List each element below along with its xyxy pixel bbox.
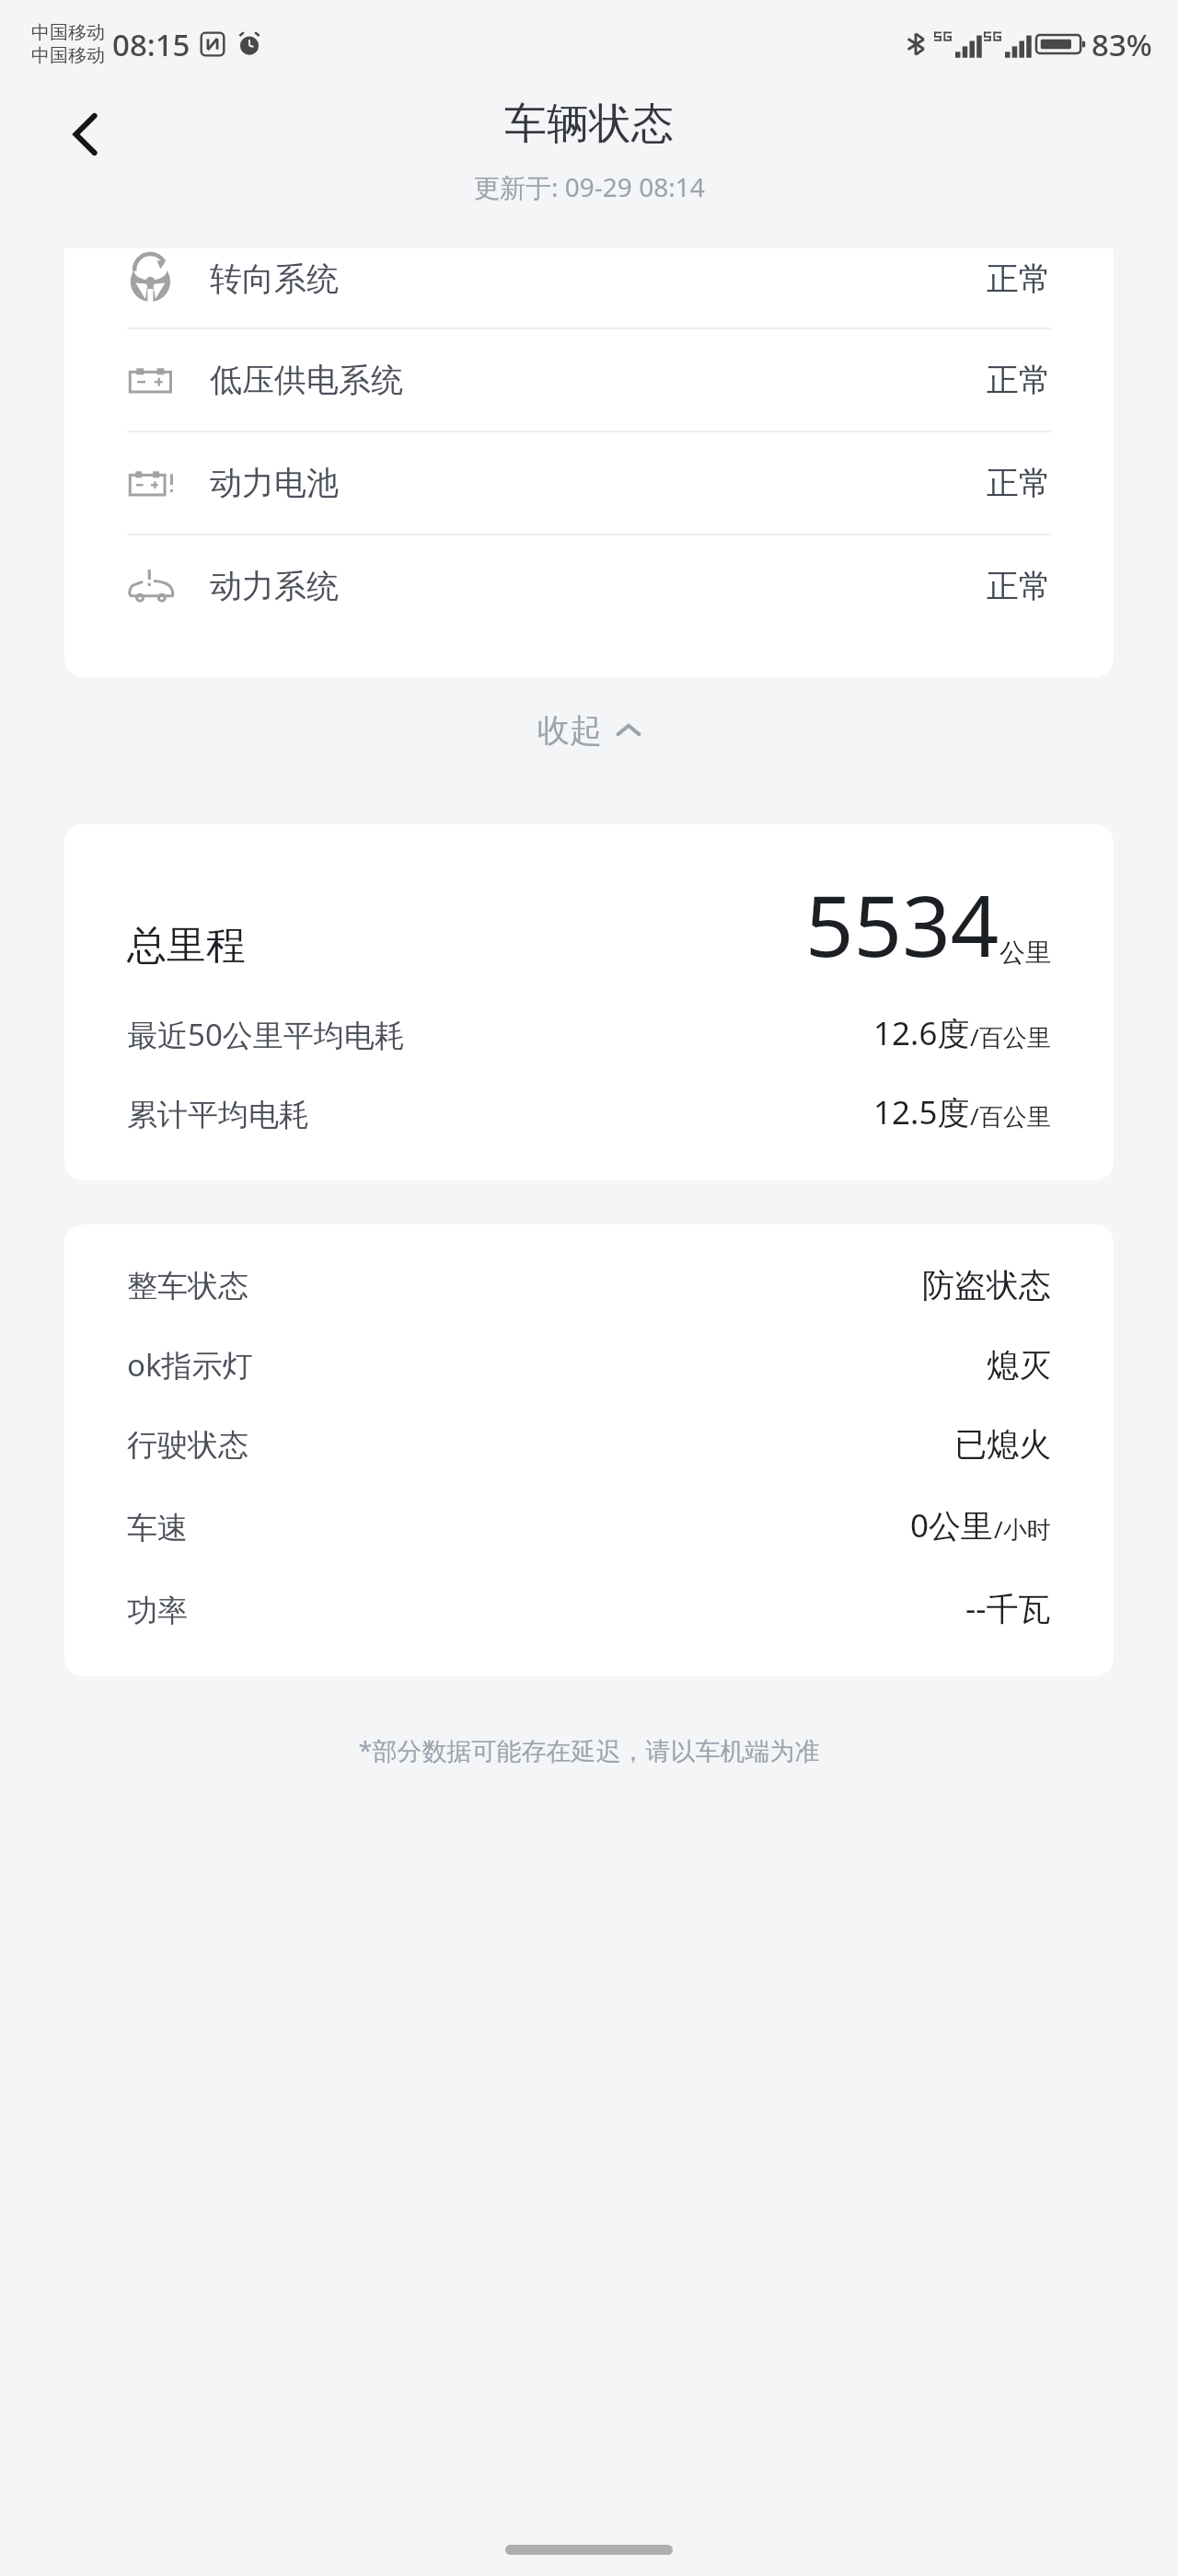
staticText: 熄灭 [987, 1345, 1051, 1386]
staticText: 累计平均电耗 [127, 1096, 309, 1134]
staticText: /百公里 [970, 1099, 1051, 1133]
button[interactable]: ok指示灯 [127, 1344, 1051, 1386]
staticText: 功率 [127, 1592, 188, 1630]
button[interactable]: 动力系统 [64, 535, 1114, 677]
staticText: 正常 [987, 566, 1051, 606]
staticText: 12.6度 [873, 1011, 970, 1055]
button[interactable]: 整车状态 [127, 1265, 1051, 1305]
staticText: 车辆状态 [504, 98, 674, 151]
staticText: 总里程 [127, 921, 246, 971]
button[interactable]: 低压供电系统 [64, 329, 1114, 431]
staticText: 已熄火 [954, 1424, 1051, 1465]
staticText: /百公里 [970, 1020, 1051, 1053]
staticText: 最近50公里平均电耗 [127, 1014, 405, 1055]
staticText: 中国移动 [31, 44, 105, 67]
staticText: 转向系统 [210, 259, 987, 299]
staticText: 0公里 [910, 1503, 994, 1547]
staticText: 车速 [127, 1509, 188, 1547]
button[interactable]: 总里程 [127, 867, 1051, 982]
staticText: 行驶状态 [127, 1426, 248, 1465]
staticText: 动力系统 [210, 566, 987, 606]
staticText: 整车状态 [127, 1267, 248, 1305]
staticText: 更新于: 09-29 08:14 [474, 169, 705, 204]
staticText: 08:15 [112, 24, 191, 65]
staticText: 5534 [805, 867, 999, 982]
button[interactable]: 功率 [127, 1586, 1051, 1630]
staticText: 公里 [999, 937, 1051, 969]
staticText: 中国移动 [31, 21, 105, 44]
button[interactable]: 收起 [497, 692, 681, 769]
staticText: *部分数据可能存在延迟，请以车机端为准 [0, 1733, 1178, 1767]
button[interactable]: 动力电池 [64, 432, 1114, 534]
button[interactable]: 转向系统 [64, 248, 1114, 328]
button[interactable]: Back [50, 98, 123, 171]
button[interactable]: 行驶状态 [127, 1424, 1051, 1465]
staticText: 83% [1091, 24, 1152, 65]
staticText: 低压供电系统 [210, 360, 987, 400]
button[interactable]: 最近50公里平均电耗 [127, 1011, 1051, 1055]
staticText: /小时 [994, 1512, 1051, 1546]
staticText: 防盗状态 [922, 1265, 1051, 1305]
staticText: --千瓦 [965, 1586, 1051, 1630]
staticText: 动力电池 [210, 463, 987, 503]
staticText: 12.5度 [873, 1090, 970, 1134]
button[interactable]: 累计平均电耗 [127, 1090, 1051, 1134]
staticText: 正常 [987, 259, 1051, 299]
staticText: 正常 [987, 360, 1051, 400]
staticText: 正常 [987, 463, 1051, 503]
staticText: ok指示灯 [127, 1344, 253, 1386]
staticText: 收起 [537, 710, 602, 751]
button[interactable]: 车速 [127, 1503, 1051, 1547]
